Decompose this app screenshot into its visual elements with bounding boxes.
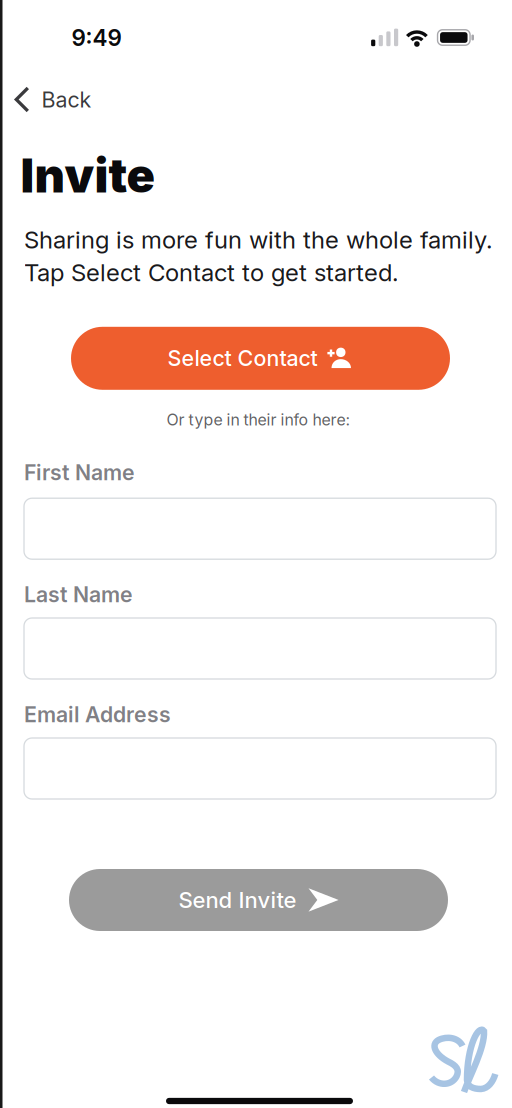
button[interactable]: Back — [14, 87, 91, 113]
button[interactable]: Select Contact — [71, 327, 450, 390]
staticText: Tap Select Contact to get started. — [24, 258, 399, 287]
staticText: Or type in their info here: — [166, 410, 350, 429]
staticText: Back — [41, 87, 91, 113]
staticText: Last Name — [24, 582, 133, 607]
staticText: Select Contact — [167, 345, 317, 371]
staticText: Invite — [20, 147, 155, 204]
staticText: Send Invite — [178, 887, 296, 913]
button[interactable]: Email Address — [24, 738, 496, 799]
button[interactable]: First Name — [24, 498, 496, 559]
staticText: 9:49 — [71, 24, 121, 51]
staticText: Email Address — [24, 702, 171, 727]
button[interactable]: Send Invite — [69, 869, 448, 931]
staticText: Sharing is more fun with the whole famil… — [24, 225, 493, 254]
button[interactable]: Last Name — [24, 618, 496, 679]
staticText: First Name — [24, 460, 135, 485]
